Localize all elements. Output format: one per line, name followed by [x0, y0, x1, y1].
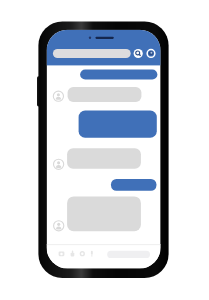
- other: Messaging app on phone illustration: [0, 0, 209, 300]
